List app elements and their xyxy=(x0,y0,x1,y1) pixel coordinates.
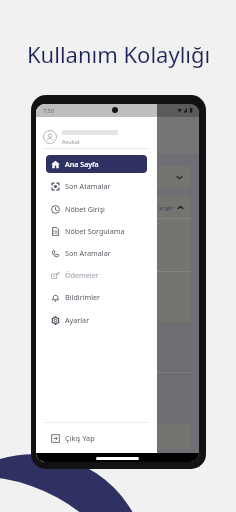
button[interactable]: Nöbet Sorgulama xyxy=(46,222,147,240)
staticText: Nöbet Girişi xyxy=(65,204,105,214)
button[interactable]: Bildirimler xyxy=(46,288,147,306)
staticText: Avukat xyxy=(62,138,80,145)
staticText: Son Aramalar xyxy=(65,248,111,258)
staticText: Çıkış Yap xyxy=(65,433,95,443)
button[interactable]: Çıkış Yap xyxy=(46,429,147,447)
button[interactable]: Ödemeler xyxy=(46,266,147,284)
staticText: Son Atamalar xyxy=(65,181,111,191)
staticText: Bildirimler xyxy=(65,292,101,302)
button[interactable]: Ayarlar xyxy=(46,311,147,329)
staticText: Nöbet Sorgulama xyxy=(65,226,125,236)
other: Genişlet xyxy=(176,174,183,181)
staticText: Ana Sayfa xyxy=(65,159,99,169)
button[interactable]: Son Atamalar xyxy=(46,177,147,195)
button[interactable]: Son Aramalar xyxy=(46,244,147,262)
staticText: yı gör xyxy=(159,204,174,211)
staticText: Ayarlar xyxy=(65,315,90,325)
staticText: Ödemeler xyxy=(65,270,99,280)
button[interactable]: Profil xyxy=(43,129,118,145)
staticText: Kullanım Kolaylığı xyxy=(27,39,211,69)
button[interactable]: Nöbet Girişi xyxy=(46,200,147,218)
staticText: 7:50 xyxy=(43,107,54,114)
button[interactable]: Ana Sayfa xyxy=(46,155,147,173)
